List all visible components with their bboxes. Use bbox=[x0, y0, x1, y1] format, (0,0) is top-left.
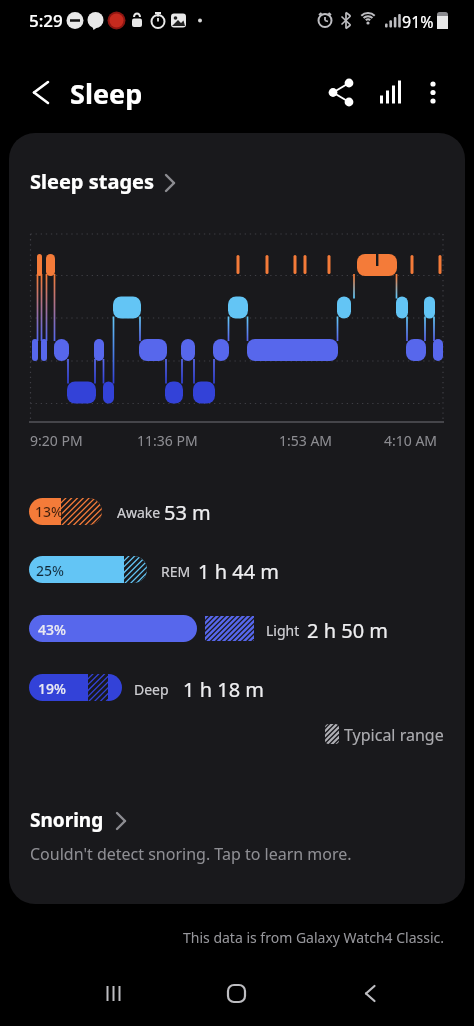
button[interactable] bbox=[368, 72, 410, 114]
staticText: Light bbox=[266, 621, 300, 640]
staticText: Sleep stages bbox=[30, 168, 155, 195]
staticText: This data is from Galaxy Watch4 Classic. bbox=[183, 928, 445, 947]
staticText: Sleep bbox=[70, 75, 143, 112]
staticText: 5:29 bbox=[29, 9, 63, 32]
staticText: 1:53 AM bbox=[279, 431, 333, 450]
staticText: Couldn't detect snoring. Tap to learn mo… bbox=[30, 843, 352, 865]
staticText: 1 h 44 m bbox=[198, 558, 279, 585]
button[interactable] bbox=[9, 785, 465, 904]
staticText: 11:36 PM bbox=[137, 431, 198, 450]
button[interactable] bbox=[20, 72, 62, 114]
staticText: 91% bbox=[402, 11, 434, 33]
staticText: Typical range bbox=[344, 724, 444, 746]
staticText: 19% bbox=[38, 679, 66, 698]
staticText: 1 h 18 m bbox=[183, 676, 264, 703]
button[interactable] bbox=[314, 965, 414, 1026]
staticText: Deep bbox=[134, 680, 169, 699]
staticText: 2 h 50 m bbox=[307, 617, 388, 644]
staticText: 4:10 AM bbox=[384, 431, 438, 450]
button[interactable] bbox=[412, 72, 454, 114]
staticText: Awake bbox=[117, 503, 161, 522]
staticText: 53 m bbox=[164, 499, 211, 526]
staticText: REM bbox=[161, 562, 191, 581]
staticText: 13% bbox=[35, 502, 63, 521]
button[interactable] bbox=[20, 155, 180, 199]
staticText: 43% bbox=[38, 620, 66, 639]
button[interactable] bbox=[187, 965, 287, 1026]
button[interactable] bbox=[320, 72, 362, 114]
staticText: 25% bbox=[36, 561, 64, 580]
staticText: 9:20 PM bbox=[30, 431, 83, 450]
button[interactable] bbox=[60, 965, 160, 1026]
staticText: Snoring bbox=[30, 807, 104, 833]
